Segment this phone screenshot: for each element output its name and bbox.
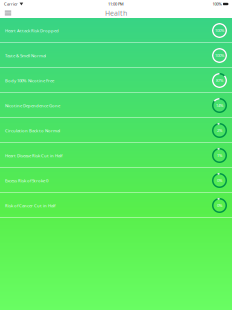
staticText: 14% [216, 103, 223, 108]
button[interactable]: Menu [1, 8, 15, 18]
staticText: Heart Disease Risk Cut in Half [5, 153, 62, 158]
staticText: 87% [216, 78, 223, 83]
staticText: Health [105, 8, 127, 18]
staticText: Risk of Cancer Cut in Half [5, 203, 55, 208]
button[interactable]: Body 100% Nicotine Free [0, 68, 232, 93]
staticText: 1% [217, 153, 222, 158]
staticText: Carrier [4, 1, 18, 7]
button[interactable]: Nicotine Dependence Gone [0, 93, 232, 118]
staticText: 100% [212, 1, 221, 7]
button[interactable]: Risk of Cancer Cut in Half [0, 193, 232, 218]
staticText: Circulation Back to Normal [5, 128, 60, 133]
button[interactable]: Heart Disease Risk Cut in Half [0, 143, 232, 168]
button[interactable]: Excess Risk of Stroke 0 [0, 168, 232, 193]
staticText: Nicotine Dependence Gone [5, 103, 60, 108]
staticText: Taste & Smell Normal [5, 53, 46, 58]
button[interactable]: Heart Attack Risk Dropped [0, 18, 232, 43]
staticText: 11:00 PM [108, 1, 124, 7]
staticText: Excess Risk of Stroke 0 [5, 178, 48, 183]
staticText: 100% [215, 28, 224, 33]
button[interactable]: Circulation Back to Normal [0, 118, 232, 143]
staticText: Heart Attack Risk Dropped [5, 28, 59, 33]
staticText: Body 100% Nicotine Free [5, 78, 54, 83]
button[interactable]: Taste & Smell Normal [0, 43, 232, 68]
staticText: 100% [215, 53, 224, 58]
staticText: 0% [217, 178, 222, 183]
staticText: 2% [217, 128, 222, 133]
staticText: 0% [217, 203, 222, 208]
